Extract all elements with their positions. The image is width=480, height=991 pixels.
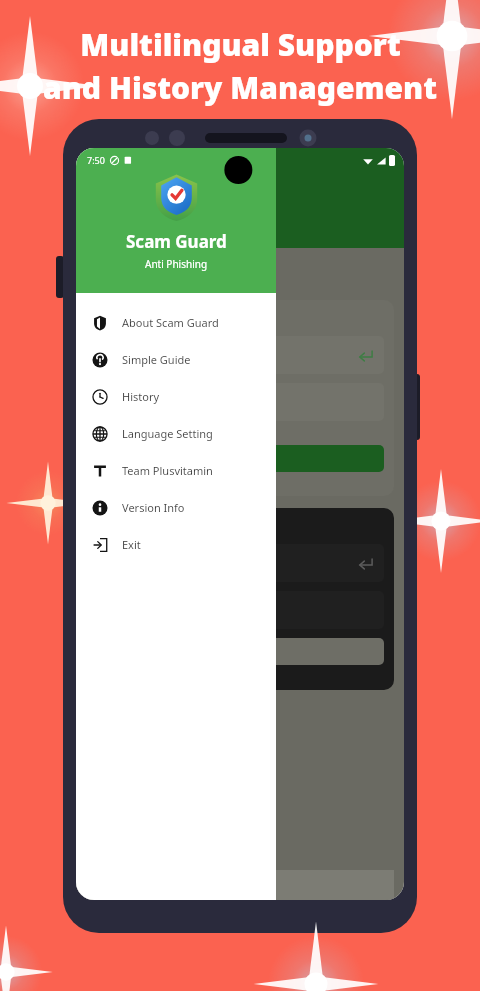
button[interactable]: About Scam Guard	[76, 304, 276, 341]
other: Submit	[358, 348, 373, 363]
button[interactable]: Language Setting	[76, 415, 276, 452]
staticText: 7:50	[87, 154, 105, 166]
staticText: Anti Phishing	[145, 257, 208, 271]
staticText: Exit	[122, 537, 141, 552]
button[interactable]: Exit	[76, 526, 276, 563]
staticText: History	[122, 389, 160, 404]
button[interactable]	[96, 383, 384, 421]
staticText: Phishing Tracking	[86, 266, 219, 286]
button[interactable]: Submit	[96, 544, 384, 582]
staticText: Multilingual Support	[80, 24, 401, 65]
other: Submit	[358, 556, 373, 571]
staticText: Scam Guard	[126, 230, 227, 253]
staticText: Team Plusvitamin	[122, 463, 213, 478]
staticText: Language Setting	[122, 426, 213, 441]
button[interactable]: Simple Guide	[76, 341, 276, 378]
button[interactable]: Submit	[96, 336, 384, 374]
staticText: (only numbers allowed)	[96, 426, 195, 438]
button[interactable]: History	[76, 378, 276, 415]
staticText: and History Management	[43, 67, 437, 108]
staticText: Simple Guide	[122, 352, 191, 367]
button[interactable]	[96, 638, 384, 665]
staticText: About Scam Guard	[122, 315, 219, 330]
button[interactable]	[96, 591, 384, 629]
button[interactable]: Team Plusvitamin	[76, 452, 276, 489]
button[interactable]	[96, 445, 384, 472]
staticText: Version Info	[122, 500, 185, 515]
button[interactable]: Version Info	[76, 489, 276, 526]
